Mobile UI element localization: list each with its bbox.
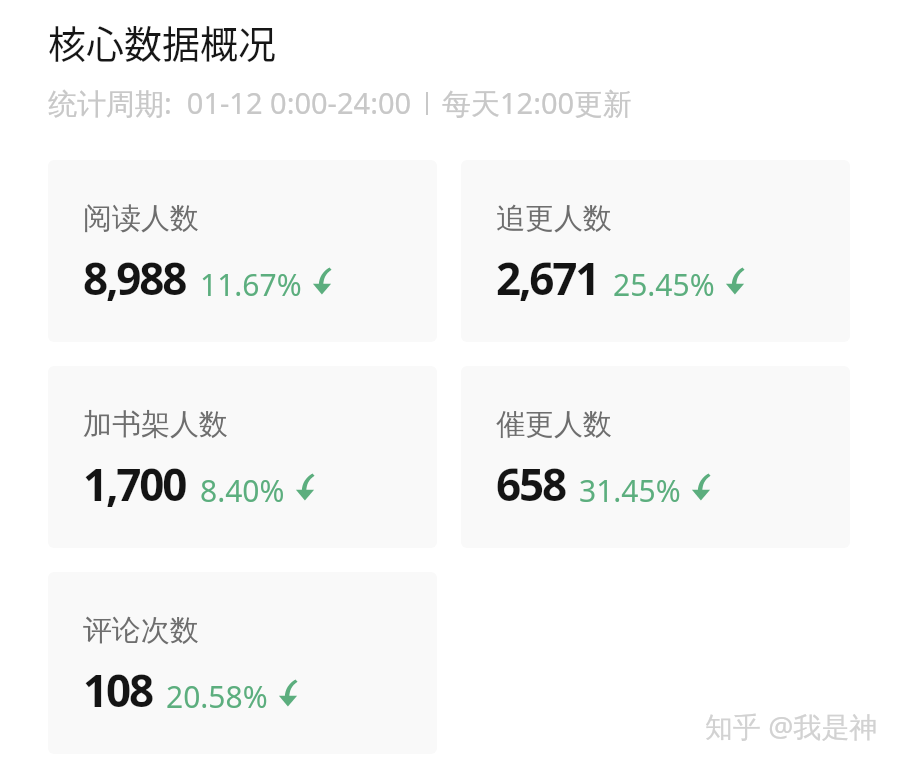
staticText: 25.45%: [613, 264, 715, 305]
staticText: 8.40%: [200, 470, 285, 511]
staticText: 核心数据概况: [48, 14, 277, 69]
staticText: 追更人数: [496, 200, 612, 237]
other: Decrease: [691, 473, 714, 501]
staticText: 阅读人数: [83, 200, 199, 237]
staticText: 评论次数: [83, 612, 199, 649]
button[interactable]: 加书架人数: [48, 366, 437, 548]
other: Decrease: [295, 473, 318, 501]
other: Decrease: [278, 679, 301, 707]
button[interactable]: 追更人数: [461, 160, 850, 342]
staticText: 31.45%: [579, 470, 681, 511]
staticText: 每天12:00更新: [442, 83, 633, 123]
other: Decrease: [312, 267, 335, 295]
staticText: 108: [83, 660, 152, 720]
staticText: 催更人数: [496, 406, 612, 443]
staticText: 8,988: [83, 248, 186, 308]
button[interactable]: 核心数据概况: [48, 14, 277, 69]
staticText: 加书架人数: [83, 406, 228, 443]
staticText: 11.67%: [200, 264, 302, 305]
button[interactable]: 评论次数: [48, 572, 437, 754]
other: Decrease: [725, 267, 748, 295]
button[interactable]: 催更人数: [461, 366, 850, 548]
button[interactable]: 阅读人数: [48, 160, 437, 342]
staticText: 2,671: [496, 248, 599, 308]
staticText: 1,700: [83, 454, 186, 514]
staticText: 统计周期: 01-12 0:00-24:00: [48, 83, 412, 123]
staticText: 658: [496, 454, 565, 514]
staticText: 知乎 @我是神: [705, 707, 878, 745]
staticText: 20.58%: [166, 676, 268, 717]
